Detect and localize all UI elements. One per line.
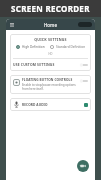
button[interactable]: Record status [78,22,92,27]
staticText: Standard Definition [56,45,86,49]
button[interactable]: Start recording [77,160,89,172]
button[interactable]: Toggle [80,63,88,67]
button[interactable]: RECORD AUDIO [10,98,91,111]
button[interactable]: FLOATING BUTTON CONTROLS [10,75,91,94]
button[interactable]: QUICK SETTINGS [10,34,91,71]
staticText: Home [44,22,57,28]
staticText: RECORD AUDIO [22,103,84,107]
staticText: HD [10,52,91,56]
button[interactable]: USE CUSTOM SETTINGS [10,62,91,67]
staticText: from here itself. [22,87,44,91]
button[interactable]: Audio enabled [84,103,88,107]
staticText: QUICK SETTINGS [10,37,91,42]
button[interactable]: Standard Definition [50,45,86,49]
staticText: USE CUSTOM SETTINGS [13,62,80,67]
button[interactable]: Menu [9,22,15,28]
button[interactable]: High Definition [16,45,45,49]
staticText: Enable to stop/pause recording options [22,83,76,87]
button[interactable]: Toggle [80,79,88,83]
staticText: SCREEN RECORDER [11,3,90,14]
staticText: High Definition [22,45,45,49]
staticText: FLOATING BUTTON CONTROLS [22,78,73,82]
